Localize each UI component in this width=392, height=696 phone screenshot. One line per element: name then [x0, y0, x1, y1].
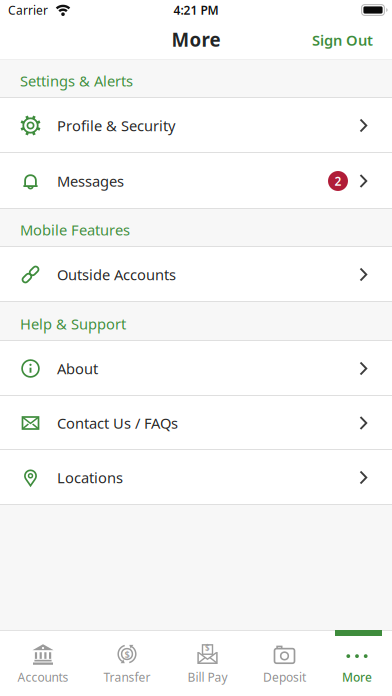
staticText: Outside Accounts — [57, 265, 176, 284]
staticText: Contact Us / FAQs — [57, 413, 178, 433]
staticText: Mobile Features — [20, 220, 130, 239]
button[interactable]: Contact Us / FAQs — [0, 396, 392, 450]
button[interactable]: Deposit — [247, 643, 322, 685]
staticText: 4:21 PM — [173, 2, 218, 18]
staticText: Locations — [57, 468, 123, 487]
button[interactable]: Accounts — [0, 643, 86, 685]
staticText: $ — [124, 648, 129, 660]
staticText: Messages — [57, 171, 124, 191]
staticText: More — [171, 27, 220, 52]
button[interactable]: Outside Accounts — [0, 247, 392, 302]
staticText: Settings & Alerts — [20, 71, 133, 90]
button[interactable]: Profile & Security — [0, 98, 392, 153]
staticText: About — [57, 359, 98, 378]
staticText: Carrier — [8, 2, 48, 18]
button[interactable]: About — [0, 341, 392, 396]
button[interactable]: $ — [168, 643, 247, 685]
button[interactable]: More — [322, 643, 392, 685]
staticText: Bill Pay — [187, 669, 227, 685]
staticText: Profile & Security — [57, 116, 175, 135]
button[interactable]: Locations — [0, 450, 392, 505]
staticText: Help & Support — [20, 314, 126, 333]
staticText: Accounts — [17, 669, 68, 685]
staticText: Sign Out — [312, 30, 373, 50]
staticText: 2 — [334, 173, 341, 189]
button[interactable]: Sign Out — [312, 30, 373, 50]
staticText: More — [342, 669, 372, 685]
staticText: $ — [205, 642, 210, 653]
staticText: Deposit — [263, 669, 306, 685]
button[interactable]: Messages — [0, 153, 392, 209]
staticText: Transfer — [103, 669, 150, 685]
button[interactable]: $ — [86, 643, 168, 685]
